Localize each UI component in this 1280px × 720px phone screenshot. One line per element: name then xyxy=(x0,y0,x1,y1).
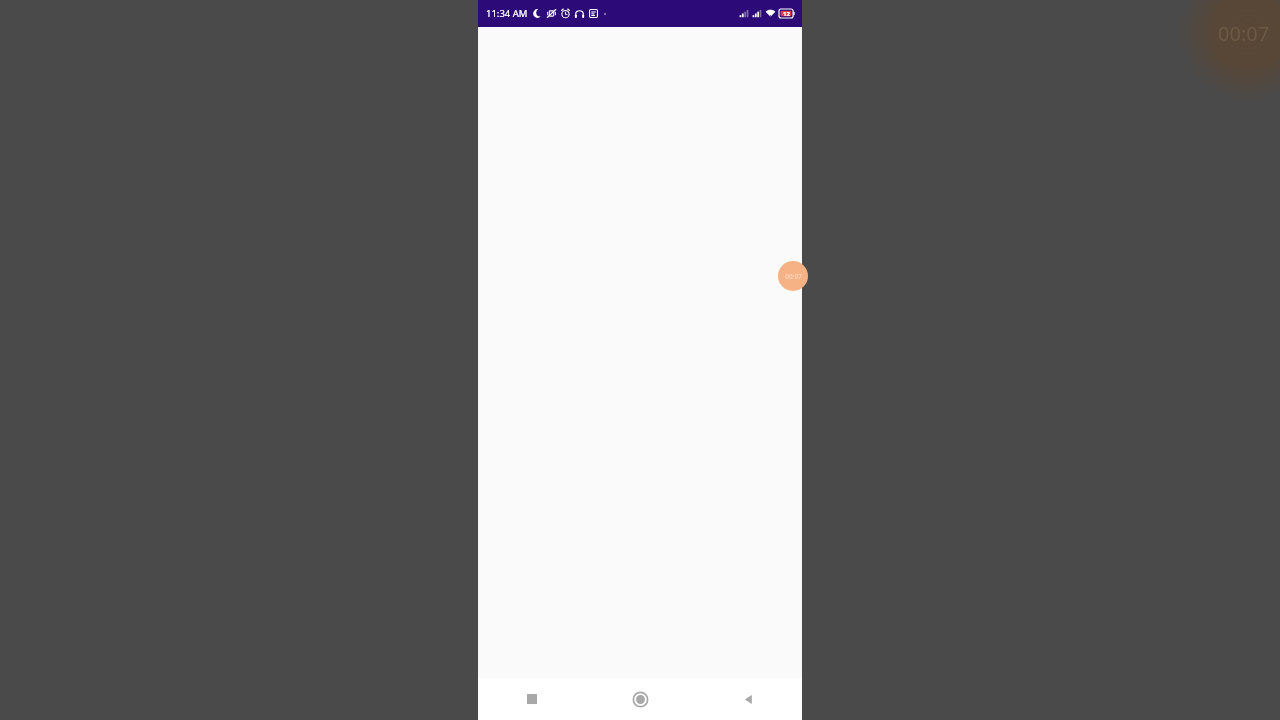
staticText: 00:07 xyxy=(1218,20,1270,46)
button[interactable]: Floating timer 00:07 xyxy=(778,261,808,291)
staticText: 00:07 xyxy=(785,272,802,281)
staticText: 12 xyxy=(783,10,790,18)
button[interactable]: Back xyxy=(694,678,802,720)
button[interactable]: Recent apps xyxy=(478,678,586,720)
button[interactable]: Home xyxy=(586,678,694,720)
staticText: 11:34 AM xyxy=(486,7,528,20)
